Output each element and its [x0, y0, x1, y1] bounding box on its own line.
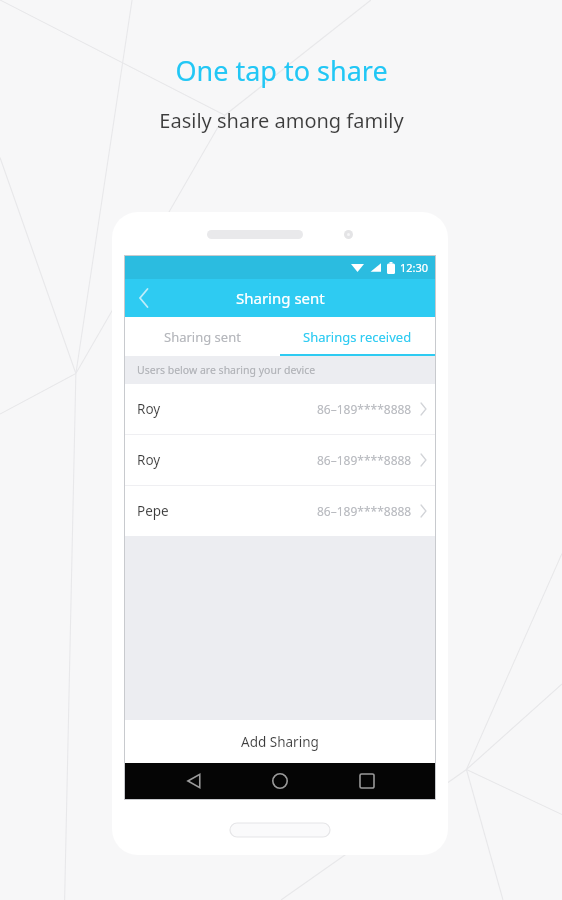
button[interactable]: Home [262, 763, 298, 799]
staticText: 12:30 [400, 260, 429, 275]
staticText: Users below are sharing your device [137, 363, 316, 377]
button[interactable]: Roy [125, 384, 435, 434]
button[interactable]: Back [125, 279, 163, 317]
staticText: Sharing sent [236, 288, 325, 308]
button[interactable]: Back [176, 763, 212, 799]
staticText: Pepe [137, 502, 169, 520]
button[interactable]: Pepe [125, 486, 435, 536]
staticText: Sharing sent [164, 328, 241, 346]
button[interactable]: Recent apps [349, 763, 385, 799]
staticText: Roy [137, 400, 161, 418]
button[interactable]: Roy [125, 435, 435, 485]
staticText: Easily share among family [159, 107, 404, 134]
staticText: Roy [137, 451, 161, 469]
staticText: 86–189****8888 [317, 401, 412, 417]
button[interactable]: Add Sharing [125, 720, 435, 763]
staticText: 86–189****8888 [317, 503, 412, 519]
button[interactable]: Sharings received [280, 317, 435, 356]
button[interactable]: Sharing sent [125, 317, 280, 356]
staticText: One tap to share [175, 52, 388, 89]
staticText: Add Sharing [241, 733, 319, 751]
staticText: Sharings received [303, 328, 412, 346]
staticText: 86–189****8888 [317, 452, 412, 468]
